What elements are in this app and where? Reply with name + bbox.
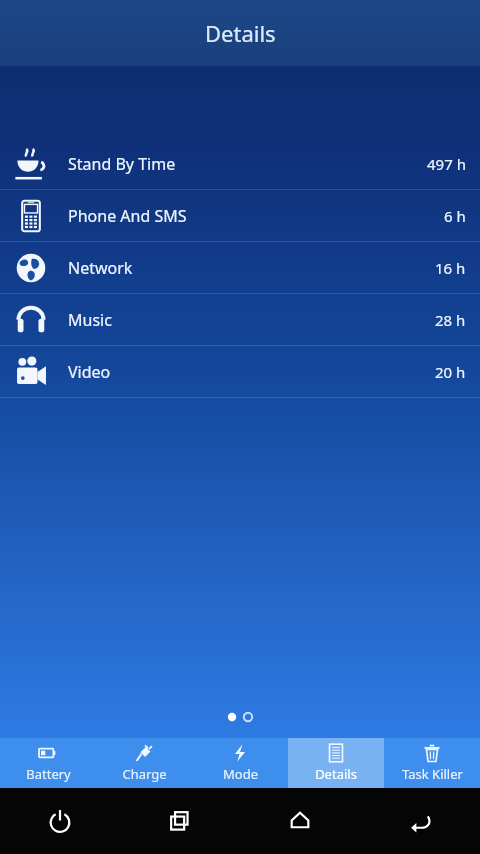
staticText: 28 h [435, 310, 466, 330]
button[interactable]: Stand By Time [0, 138, 480, 189]
button[interactable]: Charge [96, 738, 192, 788]
button[interactable]: Details [288, 738, 384, 788]
staticText: 497 h [427, 154, 466, 174]
button[interactable]: Mode [192, 738, 288, 788]
staticText: Mode [223, 765, 258, 783]
staticText: Details [205, 18, 276, 48]
button[interactable]: Phone And SMS [0, 190, 480, 241]
staticText: 6 h [444, 206, 466, 226]
staticText: 16 h [435, 258, 466, 278]
button[interactable]: Music [0, 294, 480, 345]
staticText: Details [315, 765, 357, 783]
staticText: Battery [26, 765, 71, 783]
staticText: Task Killer [402, 765, 463, 783]
button[interactable]: Network [0, 242, 480, 293]
staticText: Phone And SMS [68, 205, 187, 227]
staticText: Network [68, 257, 133, 279]
button[interactable]: Task Killer [384, 738, 480, 788]
button[interactable]: Recents [120, 788, 240, 854]
staticText: Video [68, 361, 111, 383]
button[interactable]: Power [0, 788, 120, 854]
staticText: Music [68, 309, 112, 331]
button[interactable]: Battery [0, 738, 96, 788]
button[interactable]: Home [240, 788, 360, 854]
staticText: 20 h [435, 362, 466, 382]
button[interactable]: Back [360, 788, 480, 854]
button[interactable]: Video [0, 346, 480, 397]
staticText: Stand By Time [68, 153, 176, 175]
staticText: Charge [122, 765, 167, 783]
